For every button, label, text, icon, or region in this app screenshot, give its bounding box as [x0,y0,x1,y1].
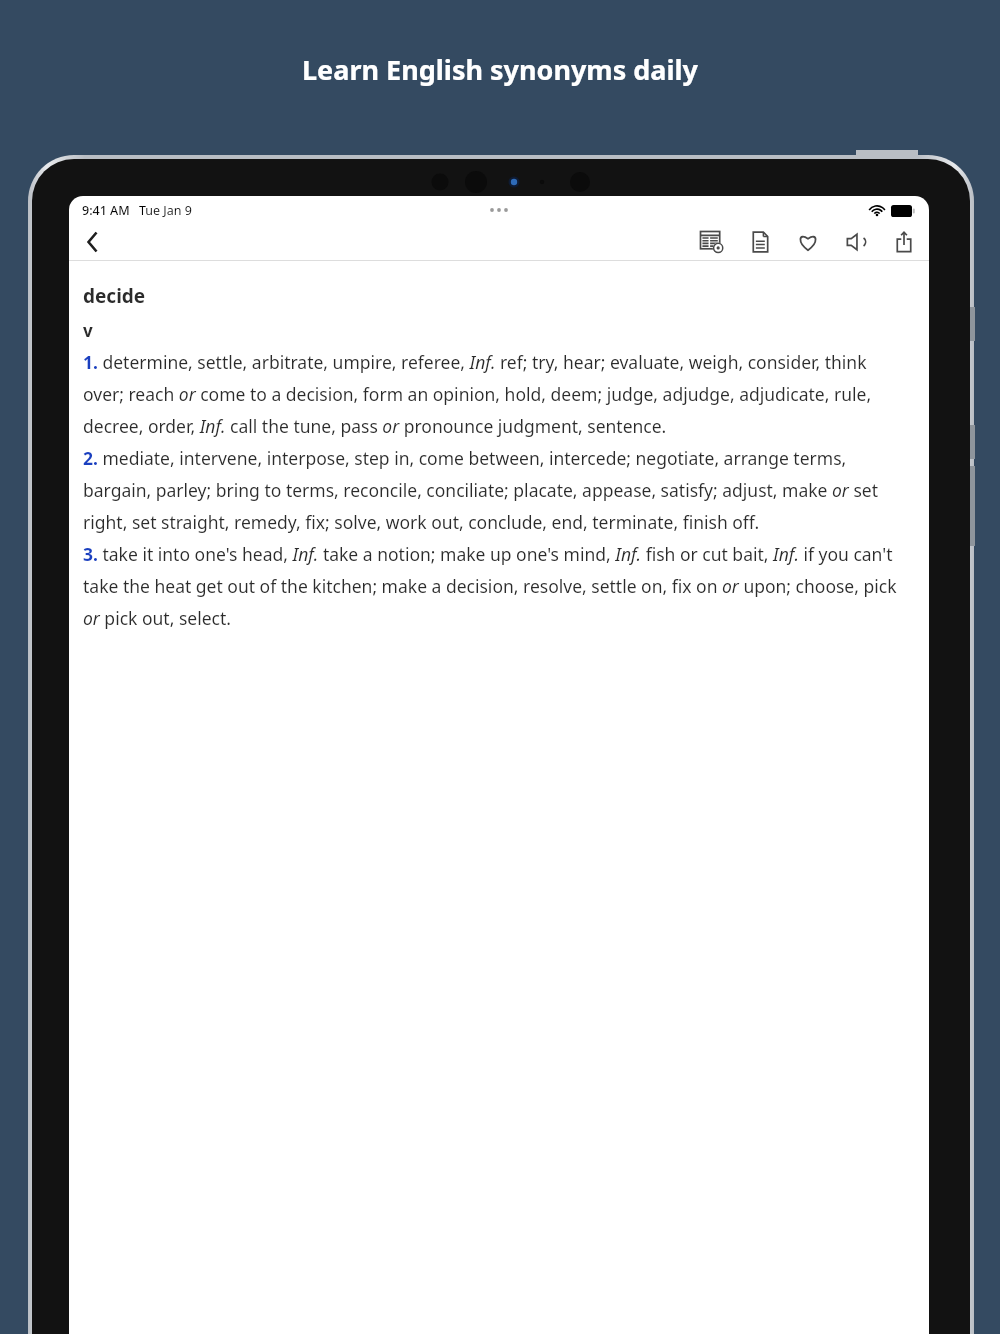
button[interactable]: Document [743,225,777,259]
staticText: Tue Jan 9 [139,202,192,219]
staticText: decide [83,283,146,309]
staticText: 9:41 AM [82,202,130,219]
button[interactable]: Article settings [695,225,729,259]
staticText: 1. determine, settle, arbitrate, umpire,… [83,350,911,630]
button[interactable]: Favorite [791,225,825,259]
staticText: Learn English synonyms daily [302,51,699,88]
button[interactable]: Back [73,224,113,260]
staticText: v [83,319,93,342]
button[interactable]: Share [887,225,921,259]
button[interactable]: Pronounce [839,225,873,259]
